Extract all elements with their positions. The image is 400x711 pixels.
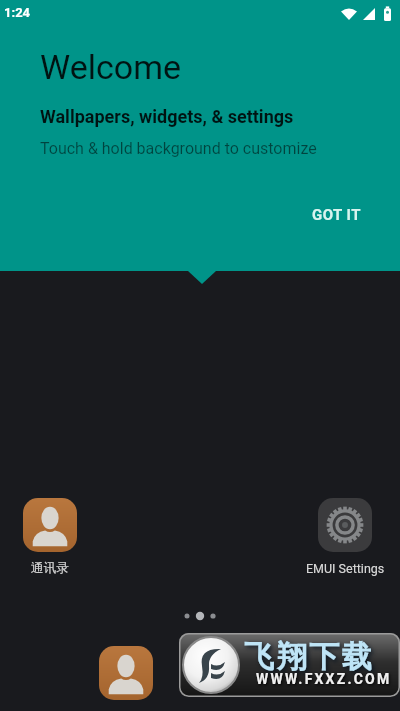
staticText: Welcome — [40, 47, 181, 87]
button[interactable] — [99, 646, 153, 700]
button[interactable]: EMUI Settings — [303, 498, 387, 576]
staticText: WWW.FXXZ.COM — [256, 671, 392, 687]
staticText: Wallpapers, widgets, & settings — [40, 106, 294, 127]
button[interactable]: 通讯录 — [14, 498, 86, 576]
staticText: Touch & hold background to customize — [40, 139, 317, 158]
button[interactable]: GOT IT — [296, 196, 377, 234]
staticText: EMUI Settings — [306, 561, 385, 576]
staticText: 1:24 — [4, 5, 31, 20]
staticText: 通讯录 — [31, 560, 69, 576]
staticText: GOT IT — [312, 206, 361, 224]
staticText: 飞翔下载 — [243, 638, 373, 676]
